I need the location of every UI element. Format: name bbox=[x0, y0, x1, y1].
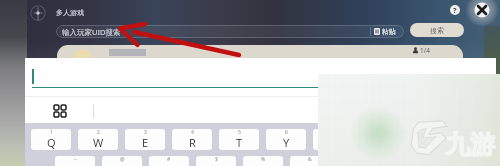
button[interactable]: # bbox=[149, 156, 189, 166]
button[interactable]: @ bbox=[102, 156, 142, 166]
button[interactable]: Close bbox=[471, 0, 493, 21]
button[interactable]: ~ bbox=[55, 156, 95, 166]
button[interactable]: % bbox=[243, 156, 283, 166]
staticText: W bbox=[93, 135, 104, 150]
button[interactable]: 3 bbox=[125, 129, 165, 150]
button[interactable]: & bbox=[290, 156, 330, 166]
staticText: 输入玩家UID搜索 bbox=[62, 27, 121, 37]
button[interactable]: 搜索 bbox=[410, 23, 464, 37]
button[interactable]: 5 bbox=[219, 129, 259, 150]
staticText: # bbox=[167, 156, 171, 163]
button[interactable]: 1/4 bbox=[57, 45, 463, 77]
staticText: Y bbox=[283, 135, 290, 150]
button[interactable]: 输入玩家UID搜索 bbox=[56, 25, 404, 38]
staticText: ? bbox=[453, 5, 457, 15]
staticText: 九游 bbox=[445, 129, 495, 160]
button[interactable]: 粘贴 bbox=[374, 26, 396, 37]
button[interactable]: 2 bbox=[78, 129, 118, 150]
staticText: T bbox=[236, 135, 243, 150]
staticText: 搜索 bbox=[430, 26, 444, 35]
button[interactable]: 1 bbox=[31, 129, 71, 150]
staticText: 4 bbox=[191, 129, 194, 136]
staticText: 粘贴 bbox=[382, 27, 396, 36]
staticText: ~ bbox=[74, 156, 77, 163]
staticText: 1/4 bbox=[420, 46, 430, 55]
staticText: @ bbox=[120, 156, 125, 163]
staticText: 5 bbox=[238, 129, 241, 136]
button[interactable]: 6 bbox=[266, 129, 306, 150]
button[interactable]: 4 bbox=[172, 129, 212, 150]
button[interactable]: Help bbox=[450, 5, 460, 15]
staticText: R bbox=[189, 135, 196, 150]
staticText: 1 bbox=[50, 129, 53, 136]
staticText: 2 bbox=[97, 129, 100, 136]
staticText: 3 bbox=[144, 129, 147, 136]
button[interactable]: Multiplayer bbox=[29, 4, 47, 22]
button[interactable]: $ bbox=[196, 156, 236, 166]
staticText: % bbox=[261, 156, 266, 163]
staticText: Q bbox=[47, 135, 56, 150]
staticText: 多人游戏 bbox=[56, 8, 84, 17]
button[interactable]: Keyboard layouts bbox=[50, 101, 70, 121]
staticText: E bbox=[142, 135, 149, 150]
button[interactable]: 7 bbox=[313, 129, 353, 150]
staticText: & bbox=[308, 156, 312, 163]
staticText: 6 bbox=[285, 129, 288, 136]
staticText: $ bbox=[215, 156, 218, 163]
